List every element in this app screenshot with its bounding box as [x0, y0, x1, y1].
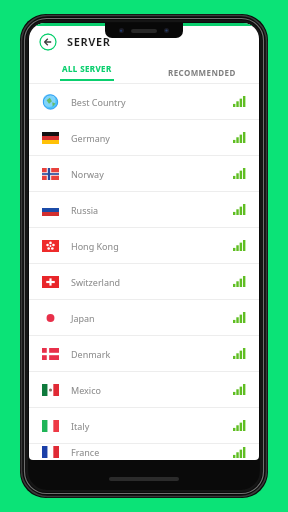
staticText: Switzerland [71, 276, 121, 288]
staticText: France [71, 446, 100, 458]
button[interactable]: Germany [29, 120, 259, 155]
button[interactable]: Denmark [29, 336, 259, 371]
staticText: Germany [71, 132, 110, 144]
staticText: Best Country [71, 96, 126, 108]
staticText: Hong Kong [71, 240, 119, 252]
staticText: SERVER [67, 34, 111, 49]
button[interactable]: ALL SERVER [29, 57, 144, 83]
staticText: Norway [71, 168, 104, 180]
staticText: Italy [71, 420, 90, 432]
button[interactable]: Norway [29, 156, 259, 191]
button[interactable]: Mexico [29, 372, 259, 407]
button[interactable]: RECOMMENDED [144, 57, 259, 83]
staticText: RECOMMENDED [168, 67, 236, 78]
button[interactable]: France [29, 444, 259, 460]
button[interactable]: Japan [29, 300, 259, 335]
button[interactable]: Back [39, 33, 57, 51]
button[interactable]: Hong Kong [29, 228, 259, 263]
staticText: Russia [71, 204, 99, 216]
button[interactable]: Italy [29, 408, 259, 443]
button[interactable]: Switzerland [29, 264, 259, 299]
staticText: Mexico [71, 384, 101, 396]
staticText: Denmark [71, 348, 111, 360]
staticText: ALL SERVER [62, 63, 112, 74]
button[interactable]: Best Country [29, 84, 259, 119]
staticText: Japan [71, 312, 95, 324]
button[interactable]: Russia [29, 192, 259, 227]
